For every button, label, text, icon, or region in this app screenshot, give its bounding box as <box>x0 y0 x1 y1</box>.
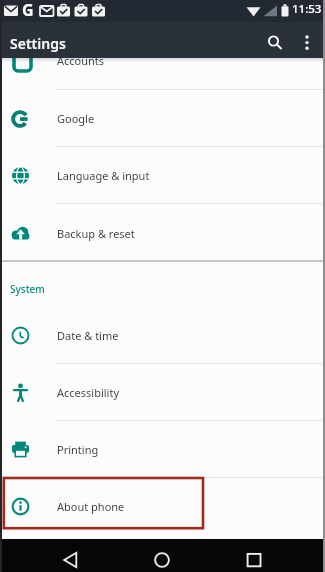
staticText: Language & input <box>57 168 150 183</box>
staticText: Backup & reset <box>57 226 135 241</box>
button[interactable]: Google <box>0 90 325 147</box>
button[interactable] <box>0 539 109 572</box>
staticText: About phone <box>57 499 125 514</box>
staticText: Settings <box>10 34 66 53</box>
staticText: Accessibility <box>57 385 120 400</box>
button[interactable]: Printing <box>0 421 325 478</box>
button[interactable] <box>295 27 321 53</box>
staticText: System <box>10 282 45 296</box>
button[interactable]: Backup & reset <box>0 204 325 262</box>
staticText: 11:53 <box>292 1 322 17</box>
button[interactable]: Accessibility <box>0 364 325 421</box>
staticText: Date & time <box>57 328 119 343</box>
button[interactable]: Date & time <box>0 307 325 364</box>
button[interactable]: Language & input <box>0 147 325 204</box>
button[interactable]: Accounts <box>0 58 325 90</box>
staticText: Printing <box>57 442 99 457</box>
button[interactable] <box>263 27 289 53</box>
button[interactable] <box>109 539 217 572</box>
staticText: G <box>22 0 34 21</box>
staticText: Google <box>57 111 95 126</box>
button[interactable]: About phone <box>0 478 325 535</box>
staticText: Accounts <box>57 58 105 68</box>
button[interactable] <box>217 539 325 572</box>
